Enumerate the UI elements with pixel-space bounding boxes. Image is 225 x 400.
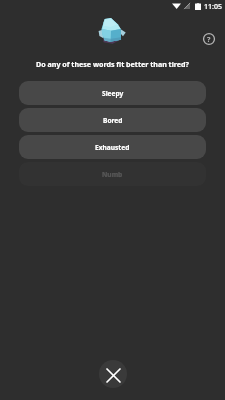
button[interactable]: Sleepy — [19, 81, 206, 105]
staticText: Sleepy — [102, 89, 124, 98]
button[interactable]: Numb — [19, 162, 206, 186]
button[interactable]: Exhausted — [19, 135, 206, 159]
staticText: Exhausted — [95, 143, 130, 152]
staticText: ? — [207, 34, 211, 44]
button[interactable]: Bored — [19, 108, 206, 132]
button[interactable]: Help — [197, 27, 221, 51]
staticText: Do any of these words fit better than ti… — [10, 59, 215, 69]
staticText: 11:05 — [204, 2, 222, 12]
staticText: Bored — [103, 116, 123, 125]
staticText: Numb — [102, 170, 123, 179]
button[interactable]: Close — [99, 360, 127, 388]
